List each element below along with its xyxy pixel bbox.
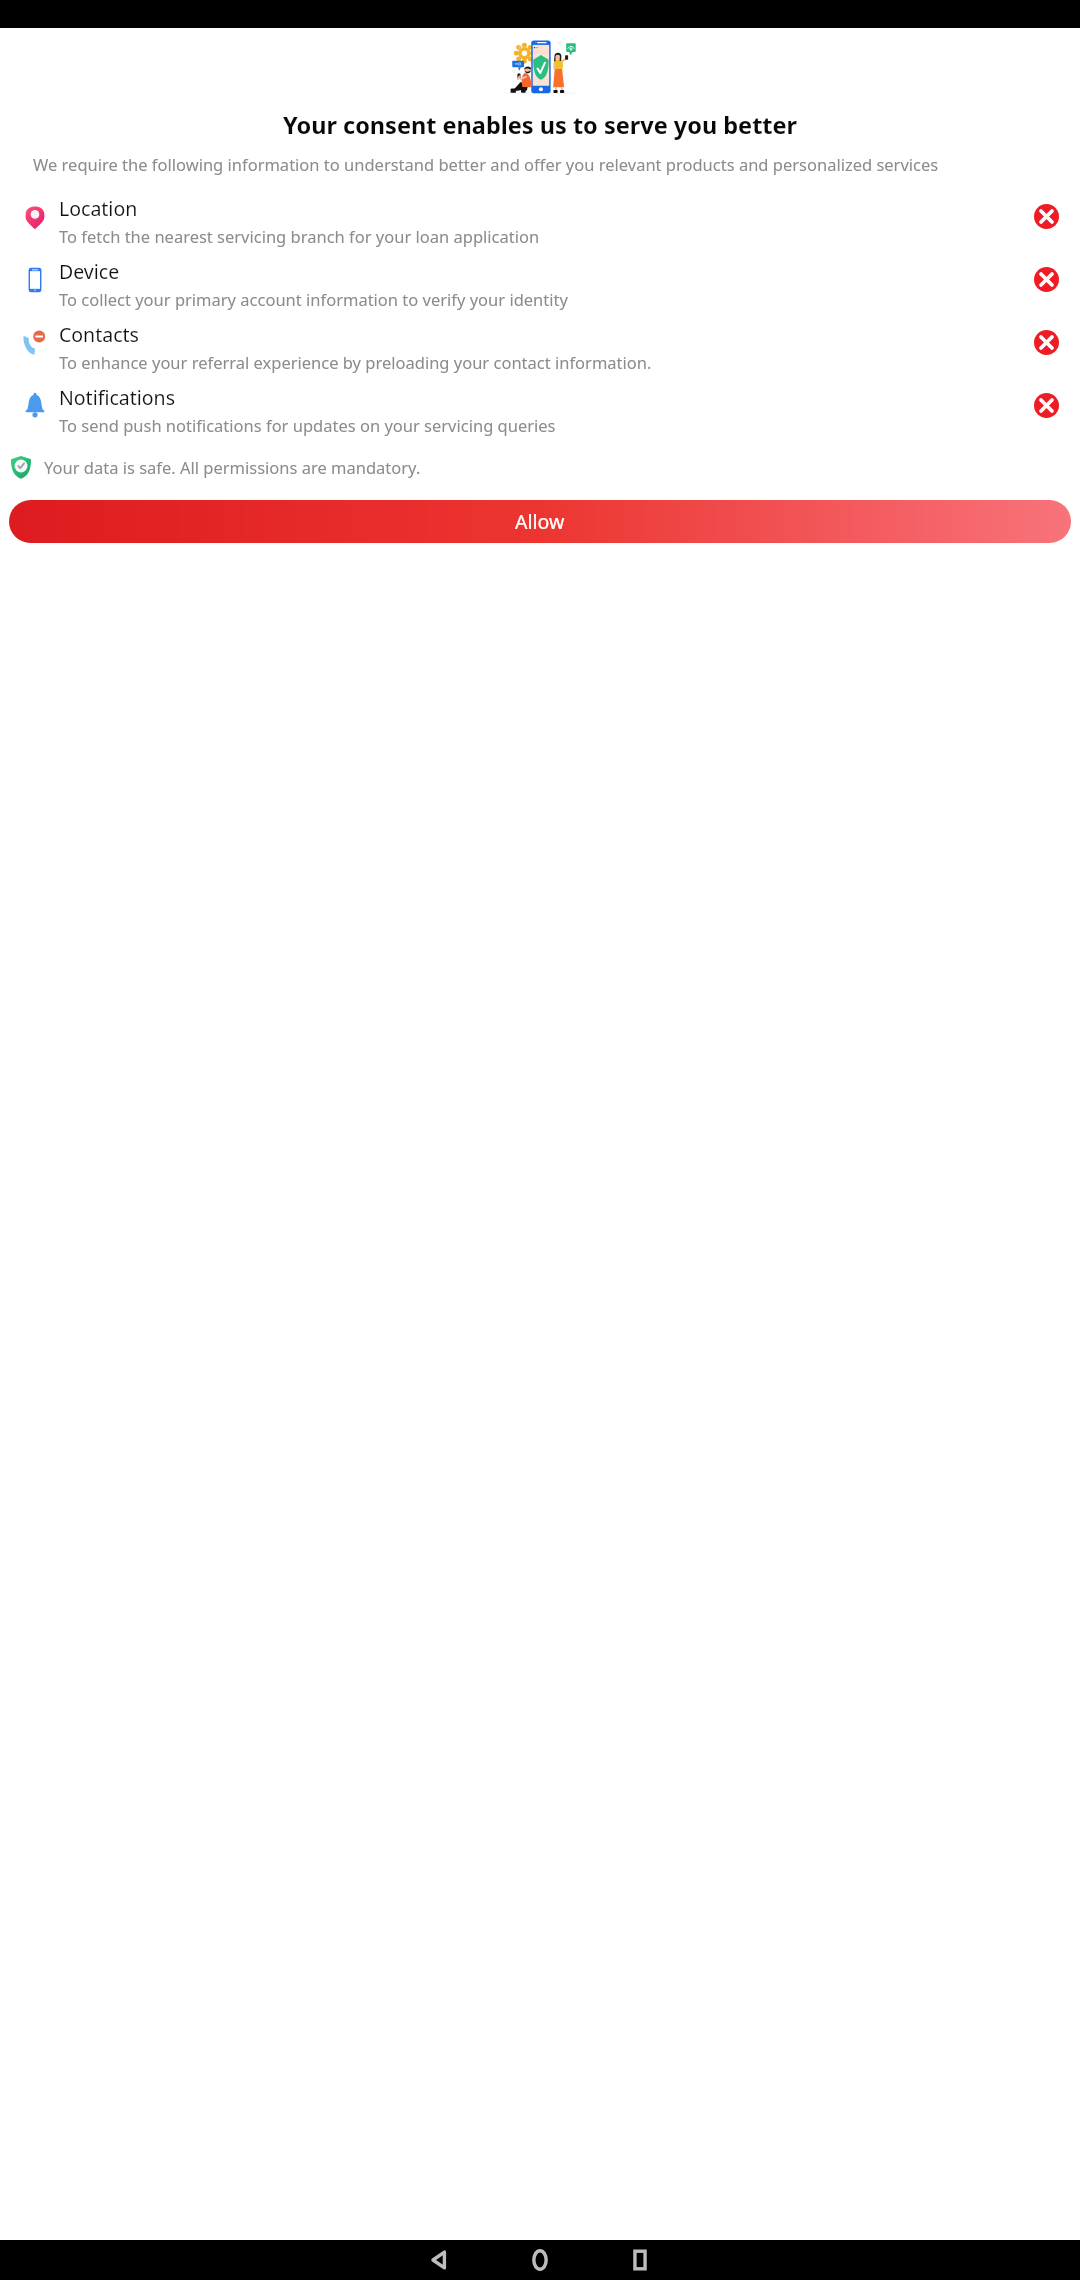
staticText: Location	[59, 195, 138, 222]
staticText: Your consent enables us to serve you bet…	[33, 109, 1047, 141]
button[interactable]: Back	[390, 2240, 490, 2280]
staticText: To send push notifications for updates o…	[59, 414, 556, 436]
staticText: Your data is safe. All permissions are m…	[44, 456, 421, 478]
button[interactable]: Home	[490, 2240, 590, 2280]
staticText: Device	[59, 258, 120, 285]
button[interactable]: Device	[0, 257, 1080, 310]
staticText: Allow	[515, 508, 565, 535]
button[interactable]: Deny Location	[1023, 194, 1069, 238]
staticText: Contacts	[59, 321, 139, 348]
button[interactable]: Deny Contacts	[1023, 320, 1069, 364]
staticText: To collect your primary account informat…	[59, 288, 568, 310]
staticText: We require the following information to …	[33, 153, 1052, 175]
button[interactable]: Deny Notifications	[1023, 383, 1069, 427]
button[interactable]: Contacts	[0, 320, 1080, 373]
button[interactable]: Notifications	[0, 383, 1080, 436]
button[interactable]: Location	[0, 194, 1080, 247]
staticText: To fetch the nearest servicing branch fo…	[59, 225, 540, 247]
staticText: Notifications	[59, 384, 175, 411]
button[interactable]: Deny Device	[1023, 257, 1069, 301]
button[interactable]: Recents	[590, 2240, 690, 2280]
staticText: To enhance your referral experience by p…	[59, 351, 652, 373]
button[interactable]: Allow	[9, 500, 1071, 543]
